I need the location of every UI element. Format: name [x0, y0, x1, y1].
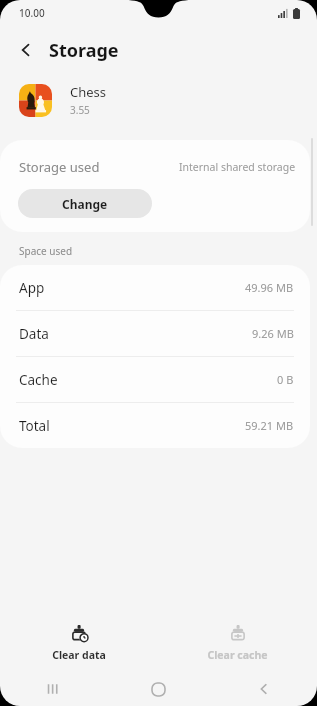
staticText: Change [62, 196, 108, 212]
staticText: 10.00 [19, 6, 45, 20]
staticText: App [19, 279, 45, 297]
staticText: 3.55 [70, 103, 90, 117]
button[interactable]: Home [105, 672, 211, 706]
staticText: Chess [70, 83, 107, 101]
staticText: 59.21 MB [245, 418, 294, 433]
staticText: Internal shared storage [179, 160, 296, 174]
staticText: Clear cache [207, 648, 268, 662]
staticText: Storage used [19, 158, 100, 176]
staticText: Total [19, 417, 50, 435]
staticText: Space used [19, 244, 73, 258]
staticText: Clear data [52, 648, 106, 662]
staticText: 0 B [277, 372, 294, 387]
button[interactable]: Cache [0, 357, 310, 402]
button[interactable]: Clear data [0, 620, 158, 666]
staticText: 49.96 MB [245, 280, 294, 295]
button[interactable]: Back [211, 672, 317, 706]
button[interactable]: Clear cache [158, 620, 317, 666]
staticText: Data [19, 325, 49, 343]
button[interactable]: Data [0, 311, 310, 356]
staticText: Cache [19, 371, 58, 389]
button[interactable]: Total [0, 403, 310, 448]
staticText: 9.26 MB [252, 326, 294, 341]
button[interactable]: App [0, 265, 310, 310]
button[interactable]: Back [10, 34, 42, 66]
button[interactable]: Recents [0, 672, 105, 706]
staticText: Storage [49, 38, 119, 63]
button[interactable]: Change [18, 189, 152, 218]
